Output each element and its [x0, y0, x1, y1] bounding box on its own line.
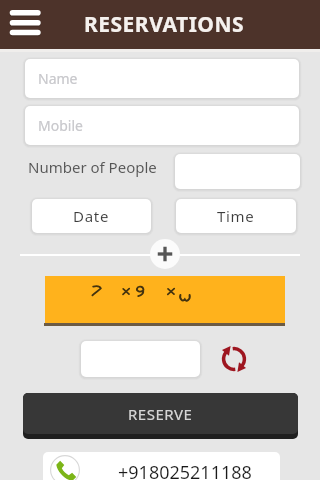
staticText: Name	[38, 69, 78, 88]
staticText: RESERVE	[128, 404, 193, 424]
staticText: RESERVATIONS	[84, 10, 245, 39]
staticText: Number of People	[28, 157, 157, 177]
staticText: Date	[73, 206, 110, 226]
button[interactable]: RESERVE	[23, 393, 298, 434]
button[interactable]: Time	[176, 199, 296, 233]
button[interactable]: Date	[32, 199, 151, 233]
button[interactable]: Refresh captcha	[218, 343, 250, 375]
button[interactable]: Add another reservation	[150, 239, 180, 269]
button[interactable]	[43, 452, 280, 480]
staticText: Mobile	[38, 116, 83, 135]
button[interactable]: Mobile	[25, 106, 299, 145]
staticText: +918025211188	[118, 460, 252, 480]
button[interactable]: Open navigation menu	[6, 6, 45, 43]
button[interactable]: Name	[25, 59, 299, 98]
staticText: Time	[217, 206, 255, 226]
